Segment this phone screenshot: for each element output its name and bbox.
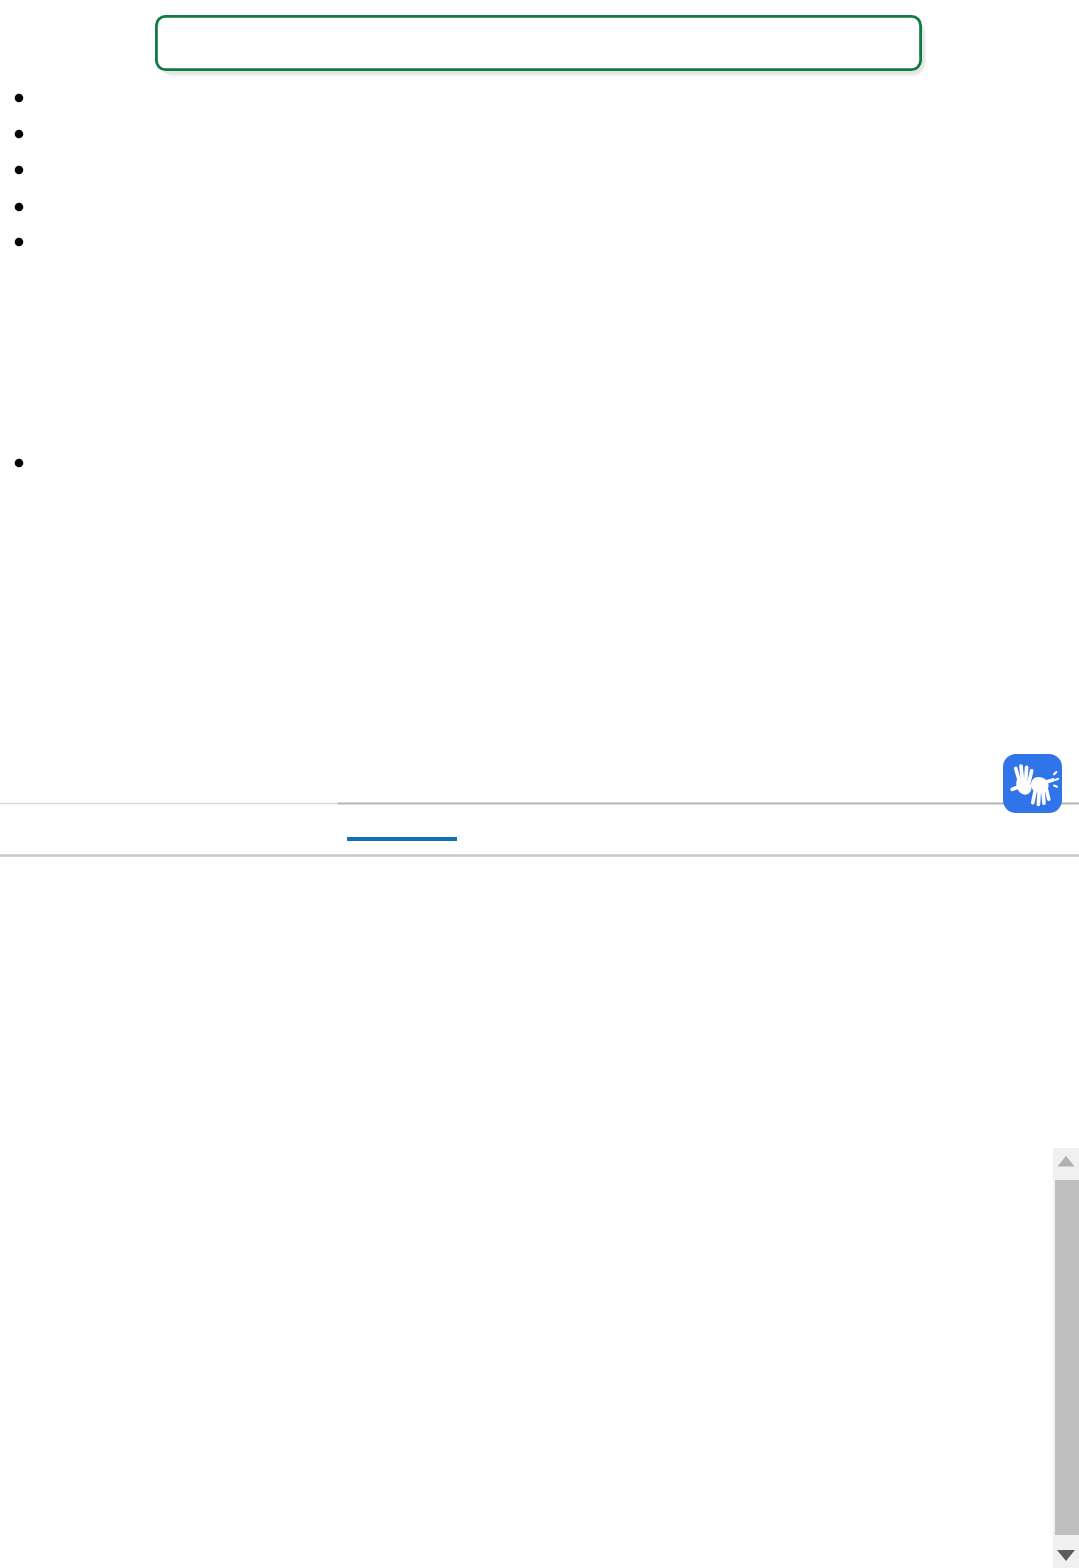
button[interactable]: Text field (155, 15, 922, 71)
button[interactable]: Sign language interpreting (1003, 754, 1062, 813)
button[interactable]: Scroll down (1053, 1540, 1079, 1568)
button[interactable]: Scroll up (1053, 1148, 1079, 1178)
